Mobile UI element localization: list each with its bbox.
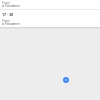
button[interactable] [0,0,100,9]
staticText: Yester [2,19,10,23]
staticText: Potsdamer [5,4,20,8]
staticText: Potsdamer [5,22,20,26]
button[interactable]: Add [63,77,69,83]
staticText: 17 · 38 [2,12,14,17]
staticText: Yester [2,1,10,5]
button[interactable] [0,10,100,27]
